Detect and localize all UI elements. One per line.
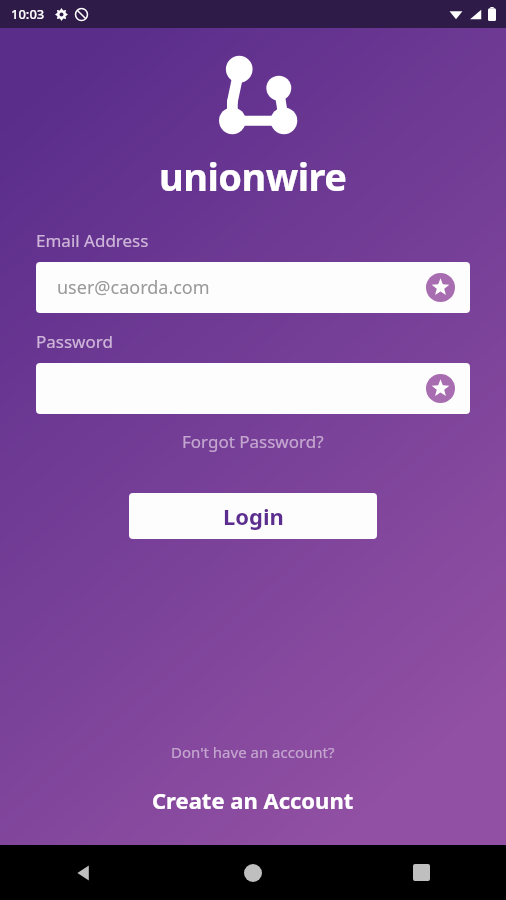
button[interactable]: Login [129, 493, 377, 539]
staticText: Forgot Password? [182, 430, 324, 453]
staticText: Login [223, 501, 284, 531]
button[interactable]: Recent apps [337, 845, 506, 900]
staticText: 10:03 [11, 5, 45, 23]
button[interactable]: Saved credential [36, 363, 470, 414]
button[interactable]: Saved credential [426, 374, 455, 403]
staticText: user@caorda.com [57, 275, 210, 300]
button[interactable]: Back [0, 845, 168, 900]
staticText: Don't have an account? [171, 742, 335, 762]
staticText: unionwire [159, 150, 347, 202]
staticText: Email Address [36, 229, 149, 252]
staticText: Create an Account [152, 785, 354, 815]
staticText: Password [36, 330, 113, 353]
button[interactable]: Home [168, 845, 337, 900]
button[interactable]: Create an Account [140, 781, 366, 819]
button[interactable]: user@caorda.com [36, 262, 470, 313]
button[interactable]: Saved credential [426, 273, 455, 302]
button[interactable]: Forgot Password? [0, 430, 506, 453]
